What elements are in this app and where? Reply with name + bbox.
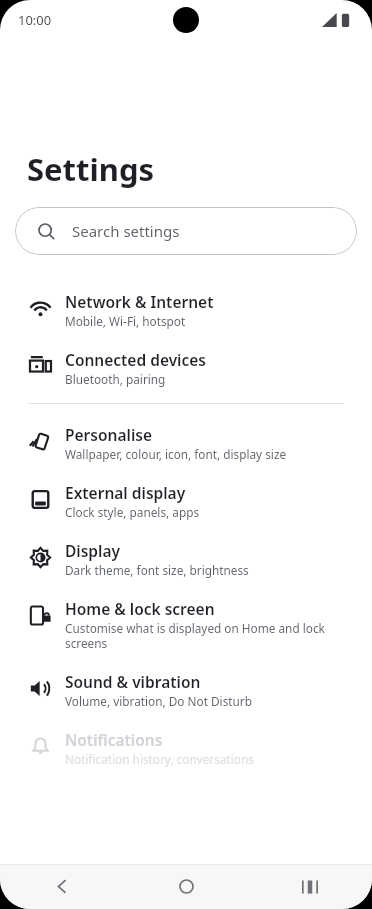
- staticText: Display: [65, 540, 121, 561]
- staticText: Clock style, panels, apps: [65, 504, 200, 520]
- staticText: Sound & vibration: [65, 671, 201, 692]
- button[interactable]: Network & Internet: [0, 280, 372, 338]
- staticText: Connected devices: [65, 349, 206, 370]
- staticText: Volume, vibration, Do Not Disturb: [65, 693, 252, 709]
- staticText: External display: [65, 482, 186, 503]
- button[interactable]: Back: [38, 864, 86, 909]
- staticText: Dark theme, font size, brightness: [65, 562, 249, 578]
- staticText: 10:00: [18, 11, 52, 29]
- staticText: Bluetooth, pairing: [65, 371, 166, 387]
- button[interactable]: Home: [162, 864, 210, 909]
- staticText: Settings: [27, 148, 155, 190]
- button[interactable]: Personalise: [0, 413, 372, 471]
- staticText: Notifications: [65, 729, 163, 750]
- button[interactable]: Sound & vibration: [0, 660, 372, 718]
- staticText: Personalise: [65, 424, 152, 445]
- button[interactable]: Notifications: [0, 718, 372, 776]
- staticText: Notification history, conversations: [65, 751, 254, 767]
- staticText: Mobile, Wi-Fi, hotspot: [65, 313, 186, 329]
- button[interactable]: Connected devices: [0, 338, 372, 396]
- staticText: Home & lock screen: [65, 598, 215, 619]
- button[interactable]: Home & lock screen: [0, 587, 372, 660]
- button[interactable]: External display: [0, 471, 372, 529]
- staticText: Wallpaper, colour, icon, font, display s…: [65, 446, 287, 462]
- staticText: Search settings: [72, 221, 180, 241]
- staticText: Customise what is displayed on Home and …: [65, 620, 354, 651]
- staticText: Network & Internet: [65, 291, 214, 312]
- button[interactable]: Recent apps: [286, 864, 334, 909]
- button[interactable]: Search settings: [15, 207, 357, 255]
- button[interactable]: Display: [0, 529, 372, 587]
